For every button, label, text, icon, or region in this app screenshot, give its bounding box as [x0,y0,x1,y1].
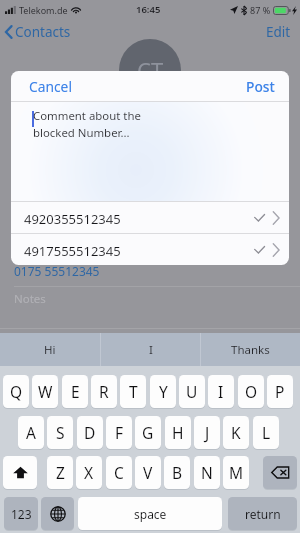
button[interactable]: D [77,416,103,449]
staticText: 0175 55512345 [14,263,100,279]
button[interactable]: space [78,497,222,530]
button[interactable]: Comment about the blocked Number... [11,102,289,201]
staticText: Cancel [29,77,72,96]
button[interactable]: Shift [3,456,37,489]
button[interactable]: E [62,375,88,408]
staticText: Z [56,462,65,483]
staticText: V [143,462,153,483]
button[interactable]: G [135,416,161,449]
button[interactable]: Edit [266,23,291,41]
staticText: return [245,506,281,522]
staticText: A [26,422,36,443]
button[interactable]: Backspace [263,456,297,489]
button[interactable]: U [179,375,205,408]
staticText: R [99,381,109,402]
staticText: Post [246,77,275,96]
button[interactable]: Hi [0,333,100,366]
button[interactable]: M [223,456,249,489]
staticText: D [84,422,96,443]
button[interactable]: P [267,375,293,408]
button[interactable]: Q [3,375,29,408]
button[interactable]: J [194,416,220,449]
button[interactable]: W [32,375,58,408]
staticText: Edit [266,23,291,41]
button[interactable]: H [165,416,191,449]
button[interactable]: Post [246,71,275,101]
button[interactable]: T [120,375,146,408]
staticText: N [201,462,213,483]
button[interactable]: R [91,375,117,408]
button[interactable]: F [106,416,132,449]
button[interactable]: 4920355512345 [11,202,289,233]
staticText: Q [10,381,23,402]
staticText: 16:45 [136,3,161,16]
button[interactable]: C [106,456,132,489]
button[interactable]: Switch keyboard [41,497,74,530]
staticText: U [186,381,198,402]
button[interactable]: 4917555512345 [11,234,289,265]
staticText: F [115,422,124,443]
staticText: T [129,381,138,402]
button[interactable]: K [223,416,249,449]
staticText: G [142,422,154,443]
staticText: Contacts [15,23,71,41]
staticText: B [172,462,183,483]
button[interactable]: 123 [4,497,38,530]
staticText: I [218,381,224,402]
button[interactable]: S [47,416,73,449]
staticText: space [134,506,167,522]
staticText: O [245,381,258,402]
button[interactable]: I [101,333,200,366]
button[interactable]: Z [47,456,73,489]
button[interactable]: B [164,456,190,489]
button[interactable]: V [135,456,161,489]
staticText: K [231,422,241,443]
button[interactable]: N [194,456,220,489]
staticText: Hi [44,342,56,358]
staticText: Telekom.de [19,4,68,16]
button[interactable]: Y [150,375,176,408]
staticText: CT [137,55,164,85]
staticText: S [56,422,65,443]
button[interactable]: I [208,375,234,408]
staticText: Y [159,381,168,402]
staticText: M [229,462,244,483]
button[interactable]: L [253,416,279,449]
staticText: I [149,342,153,358]
staticText: 4917555512345 [24,242,121,260]
staticText: E [71,381,80,402]
button[interactable]: A [18,416,44,449]
staticText: Notes [14,291,46,307]
staticText: C [114,462,124,483]
button[interactable]: Contacts [5,23,71,41]
staticText: 87 % [250,4,271,16]
staticText: Comment about the blocked Number... [33,108,141,140]
staticText: X [84,462,94,483]
staticText: W [38,381,53,402]
button[interactable]: return [228,497,297,530]
staticText: J [205,422,210,443]
staticText: 123 [11,506,32,522]
staticText: P [275,381,285,402]
button[interactable]: Thanks [201,333,300,366]
staticText: H [172,422,184,443]
button[interactable]: X [76,456,102,489]
button[interactable]: O [238,375,264,408]
staticText: Thanks [231,342,270,358]
staticText: 4920355512345 [24,210,121,228]
staticText: L [262,422,271,443]
button[interactable]: Cancel [29,71,72,101]
